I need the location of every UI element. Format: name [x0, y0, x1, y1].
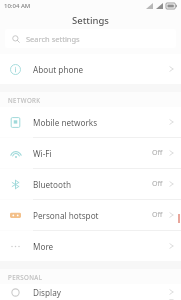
- staticText: Search settings: [26, 34, 80, 44]
- button[interactable]: Bluetooth: [0, 169, 181, 199]
- other: More: [10, 241, 21, 252]
- staticText: Off: [152, 148, 163, 158]
- staticText: PERSONAL: [8, 273, 43, 281]
- staticText: Off: [152, 179, 163, 189]
- staticText: 10:04 AM: [4, 2, 31, 10]
- button[interactable]: About phone: [0, 54, 181, 84]
- button[interactable]: Mobile networks: [0, 107, 181, 137]
- staticText: Mobile networks: [33, 117, 98, 128]
- staticText: Display: [33, 287, 61, 298]
- staticText: Settings: [72, 14, 109, 27]
- staticText: NETWORK: [8, 96, 41, 104]
- other: Display: [10, 287, 21, 298]
- staticText: Bluetooth: [33, 179, 71, 190]
- button[interactable]: Search settings: [5, 29, 176, 48]
- other: Bluetooth: [10, 179, 21, 190]
- staticText: About phone: [33, 64, 84, 75]
- button[interactable]: Personal hotspot: [0, 200, 181, 230]
- button[interactable]: More: [0, 231, 181, 261]
- staticText: More: [33, 241, 54, 252]
- staticText: Wi-Fi: [33, 148, 52, 159]
- other: Wi-Fi: [10, 148, 22, 160]
- button[interactable]: Display: [0, 284, 181, 300]
- staticText: Personal hotspot: [33, 210, 99, 221]
- staticText: Off: [152, 210, 163, 220]
- other: Mobile networks: [10, 117, 21, 128]
- other: Personal hotspot: [10, 210, 21, 221]
- button[interactable]: Wi-Fi: [0, 138, 181, 168]
- other: About phone: [10, 64, 21, 75]
